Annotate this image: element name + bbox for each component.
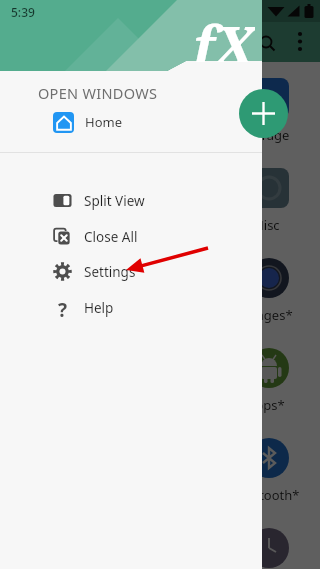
- staticText: Home: [85, 113, 122, 131]
- staticText: ?: [58, 297, 68, 318]
- staticText: 5:39: [11, 4, 35, 20]
- button[interactable]: Settings: [0, 254, 262, 289]
- button[interactable]: Home: [0, 107, 262, 137]
- staticText: Storage: [242, 126, 290, 144]
- staticText: Split View: [84, 192, 145, 210]
- staticText: OPEN WINDOWS: [38, 83, 158, 103]
- button[interactable]: ?: [0, 290, 262, 325]
- staticText: fX: [193, 8, 255, 62]
- button[interactable]: Add: [239, 89, 288, 138]
- staticText: Misc: [252, 216, 280, 234]
- staticText: Close All: [84, 228, 138, 246]
- staticText: Bluetooth*: [232, 486, 300, 504]
- button[interactable]: Split View: [0, 183, 262, 218]
- staticText: Images*: [240, 306, 293, 324]
- staticText: Help: [84, 299, 114, 317]
- staticText: Settings: [84, 263, 136, 281]
- button[interactable]: Close All: [0, 219, 262, 254]
- staticText: Apps*: [247, 396, 285, 414]
